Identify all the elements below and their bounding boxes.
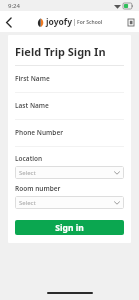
button[interactable]: Select — [15, 196, 124, 209]
staticText: Location — [15, 154, 43, 163]
staticText: Select — [19, 169, 114, 177]
staticText: Field Trip Sign In — [15, 44, 106, 59]
button[interactable]: Back — [0, 13, 18, 31]
staticText: Room number — [15, 184, 61, 193]
staticText: Select — [19, 199, 114, 207]
staticText: Last Name — [15, 101, 49, 110]
staticText: Sign in — [55, 222, 84, 234]
staticText: 9:24 — [8, 2, 20, 10]
button[interactable]: Sign in — [15, 220, 124, 235]
staticText: First Name — [15, 74, 50, 83]
staticText: Phone Number — [15, 128, 64, 137]
staticText: For School — [77, 19, 103, 26]
staticText: joyofy — [46, 16, 72, 28]
button[interactable]: Menu — [123, 14, 139, 30]
button[interactable]: Select — [15, 166, 124, 179]
